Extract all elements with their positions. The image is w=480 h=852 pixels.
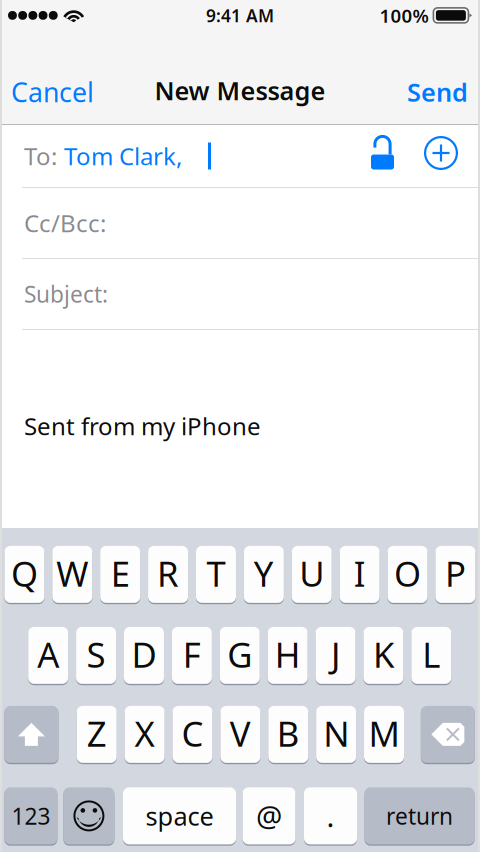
staticText: E	[111, 550, 130, 596]
button[interactable]: W	[52, 546, 92, 603]
button[interactable]: J	[315, 627, 355, 684]
staticText: A	[37, 631, 59, 677]
staticText: W	[56, 550, 88, 596]
staticText: M	[368, 710, 399, 756]
staticText: V	[230, 710, 251, 756]
button[interactable]: Cc/Bcc:	[0, 188, 480, 258]
staticText: space	[145, 799, 213, 833]
staticText: Subject:	[24, 279, 108, 309]
button[interactable]: Encryption off	[369, 139, 395, 173]
staticText: B	[277, 710, 300, 756]
button[interactable]: space	[123, 787, 236, 844]
staticText: H	[275, 631, 301, 677]
staticText: To:	[24, 140, 57, 172]
button[interactable]: A	[28, 627, 68, 684]
button[interactable]: .	[304, 787, 357, 844]
button[interactable]: Delete	[421, 706, 475, 763]
staticText: O	[394, 550, 421, 596]
button[interactable]: Shift	[4, 706, 58, 763]
staticText: Send	[407, 75, 468, 109]
button[interactable]: U	[292, 546, 332, 603]
button[interactable]: P	[435, 546, 475, 603]
staticText: .	[326, 796, 334, 835]
staticText: R	[157, 550, 179, 596]
button[interactable]: Q	[4, 546, 44, 603]
staticText: Z	[87, 710, 107, 756]
staticText: 123	[11, 801, 50, 831]
staticText: Cancel	[11, 74, 94, 110]
button[interactable]: Subject:	[0, 259, 480, 329]
staticText: Y	[254, 550, 274, 596]
button[interactable]: Cancel	[0, 40, 109, 125]
button[interactable]: N	[316, 706, 356, 763]
staticText: Sent from my iPhone	[24, 410, 261, 442]
button[interactable]: X	[125, 706, 165, 763]
button[interactable]: return	[364, 787, 474, 844]
button[interactable]: E	[100, 546, 140, 603]
button[interactable]: K	[363, 627, 403, 684]
button[interactable]: D	[124, 627, 164, 684]
button[interactable]: I	[340, 546, 380, 603]
button[interactable]: Emoji	[63, 787, 114, 844]
staticText: S	[87, 631, 106, 677]
staticText: Cc/Bcc:	[24, 207, 106, 239]
button[interactable]: Send	[392, 40, 480, 125]
staticText: F	[183, 631, 201, 677]
staticText: 9:41 AM	[206, 4, 274, 27]
staticText: L	[422, 631, 440, 677]
button[interactable]: Y	[244, 546, 284, 603]
button[interactable]: G	[220, 627, 260, 684]
button[interactable]: C	[172, 706, 212, 763]
button[interactable]: O	[387, 546, 427, 603]
staticText: D	[131, 631, 156, 677]
button[interactable]: @	[242, 787, 295, 844]
staticText: P	[445, 550, 466, 596]
button[interactable]: B	[268, 706, 308, 763]
staticText: @	[256, 796, 282, 835]
staticText: Q	[11, 550, 38, 596]
button[interactable]: H	[268, 627, 308, 684]
staticText: N	[323, 710, 349, 756]
button[interactable]: S	[76, 627, 116, 684]
button[interactable]: Z	[77, 706, 117, 763]
button[interactable]: L	[411, 627, 451, 684]
button[interactable]: M	[364, 706, 404, 763]
button[interactable]: 123	[4, 787, 57, 844]
staticText: G	[227, 631, 252, 677]
staticText: return	[386, 801, 453, 831]
staticText: U	[299, 550, 324, 596]
staticText: I	[354, 550, 366, 596]
button[interactable]: F	[172, 627, 212, 684]
staticText: K	[373, 631, 394, 677]
staticText: J	[331, 631, 340, 677]
staticText: New Message	[154, 74, 325, 107]
staticText: T	[206, 550, 225, 596]
staticText: C	[181, 710, 203, 756]
button[interactable]: R	[148, 546, 188, 603]
staticText: X	[135, 710, 155, 756]
button[interactable]: V	[220, 706, 260, 763]
button[interactable]: Add contact	[424, 139, 458, 173]
button[interactable]: T	[196, 546, 236, 603]
staticText: 100%	[379, 3, 428, 28]
staticText: Tom Clark,	[64, 140, 182, 172]
